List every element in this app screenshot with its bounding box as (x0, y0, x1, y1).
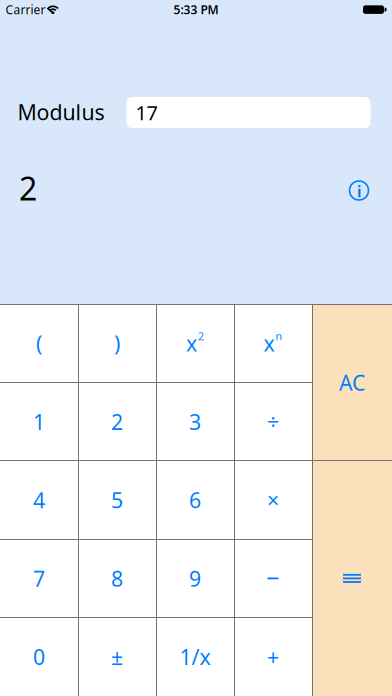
staticText: 5 (111, 486, 123, 514)
staticText: ÷ (267, 407, 279, 436)
staticText: 3 (189, 407, 201, 436)
staticText: 1 (33, 407, 45, 436)
staticText: + (267, 643, 279, 671)
button[interactable]: + (234, 618, 312, 696)
button[interactable]: 3 (156, 382, 234, 461)
button[interactable]: ( (0, 304, 78, 382)
staticText: ( (36, 329, 42, 357)
staticText: 4 (33, 486, 45, 514)
staticText: 1/x (179, 643, 210, 671)
staticText: × (267, 486, 279, 514)
staticText: 9 (189, 564, 201, 592)
button[interactable]: 5 (78, 461, 156, 539)
staticText: ± (111, 643, 123, 671)
button[interactable]: Modulus value (126, 97, 370, 128)
button[interactable]: x (234, 304, 312, 382)
staticText: n (275, 329, 282, 343)
staticText: AC (339, 368, 365, 396)
button[interactable]: Info (344, 175, 374, 205)
button[interactable]: ÷ (234, 382, 312, 461)
button[interactable]: ) (78, 304, 156, 382)
staticText: 8 (111, 564, 123, 592)
button[interactable]: 1/x (156, 618, 234, 696)
button[interactable]: 2 (78, 382, 156, 461)
button[interactable]: 9 (156, 539, 234, 618)
staticText: Modulus (17, 98, 104, 126)
staticText: x (263, 329, 274, 357)
button[interactable]: 0 (0, 618, 78, 696)
button[interactable]: x (156, 304, 234, 382)
staticText: Carrier (5, 1, 45, 17)
staticText: 6 (189, 486, 201, 514)
staticText: x (186, 329, 197, 357)
button[interactable]: 1 (0, 382, 78, 461)
button[interactable]: 7 (0, 539, 78, 618)
staticText: 7 (33, 564, 45, 592)
staticText: 17 (135, 99, 157, 126)
button[interactable]: Equals (312, 461, 392, 696)
staticText: 0 (33, 643, 45, 671)
staticText: 2 (198, 329, 204, 343)
staticText: 2 (19, 167, 37, 209)
button[interactable]: × (234, 461, 312, 539)
staticText: 2 (111, 407, 123, 436)
button[interactable]: ± (78, 618, 156, 696)
staticText: 5:33 PM (173, 1, 218, 17)
button[interactable]: 6 (156, 461, 234, 539)
button[interactable]: 4 (0, 461, 78, 539)
button[interactable]: 8 (78, 539, 156, 618)
button[interactable]: Minus (234, 539, 312, 618)
button[interactable]: AC (312, 304, 392, 461)
staticText: ) (114, 329, 120, 357)
